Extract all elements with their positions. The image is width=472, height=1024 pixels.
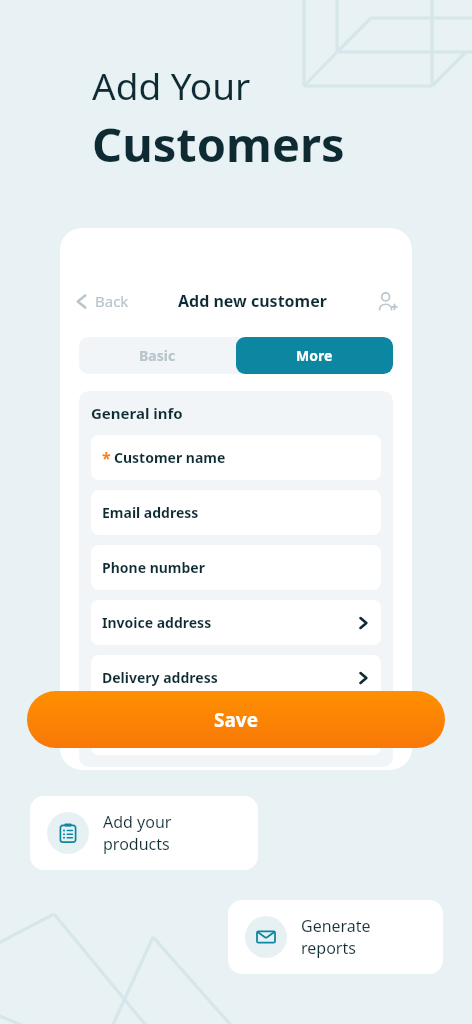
staticText: Phone number: [102, 558, 205, 577]
button[interactable]: Back: [70, 285, 133, 317]
staticText: Back: [95, 291, 129, 311]
button[interactable]: Notes: [91, 710, 381, 755]
button[interactable]: Add customer: [372, 286, 402, 316]
staticText: *: [102, 447, 111, 469]
button[interactable]: *: [91, 435, 381, 480]
staticText: Add Your: [92, 60, 251, 110]
button[interactable]: Phone number: [91, 545, 381, 590]
button[interactable]: More: [236, 337, 393, 374]
staticText: Invoice address: [102, 613, 212, 632]
button[interactable]: Invoice address: [91, 600, 381, 645]
staticText: More: [296, 346, 333, 365]
staticText: Add new customer: [178, 290, 327, 312]
staticText: Basic: [139, 346, 176, 365]
button[interactable]: Email address: [91, 490, 381, 535]
staticText: Delivery address: [102, 668, 218, 687]
button[interactable]: Generate reports: [228, 900, 443, 974]
button[interactable]: Basic: [79, 337, 236, 374]
staticText: Customer name: [114, 448, 226, 467]
staticText: Email address: [102, 503, 199, 522]
button[interactable]: Add your products: [30, 796, 258, 870]
staticText: Generate reports: [301, 915, 426, 959]
staticText: General info: [91, 403, 183, 423]
staticText: Add your products: [103, 811, 241, 855]
staticText: Customers: [92, 112, 345, 176]
staticText: Save: [214, 707, 259, 733]
button[interactable]: Save: [27, 691, 445, 748]
button[interactable]: Delivery address: [91, 655, 381, 700]
